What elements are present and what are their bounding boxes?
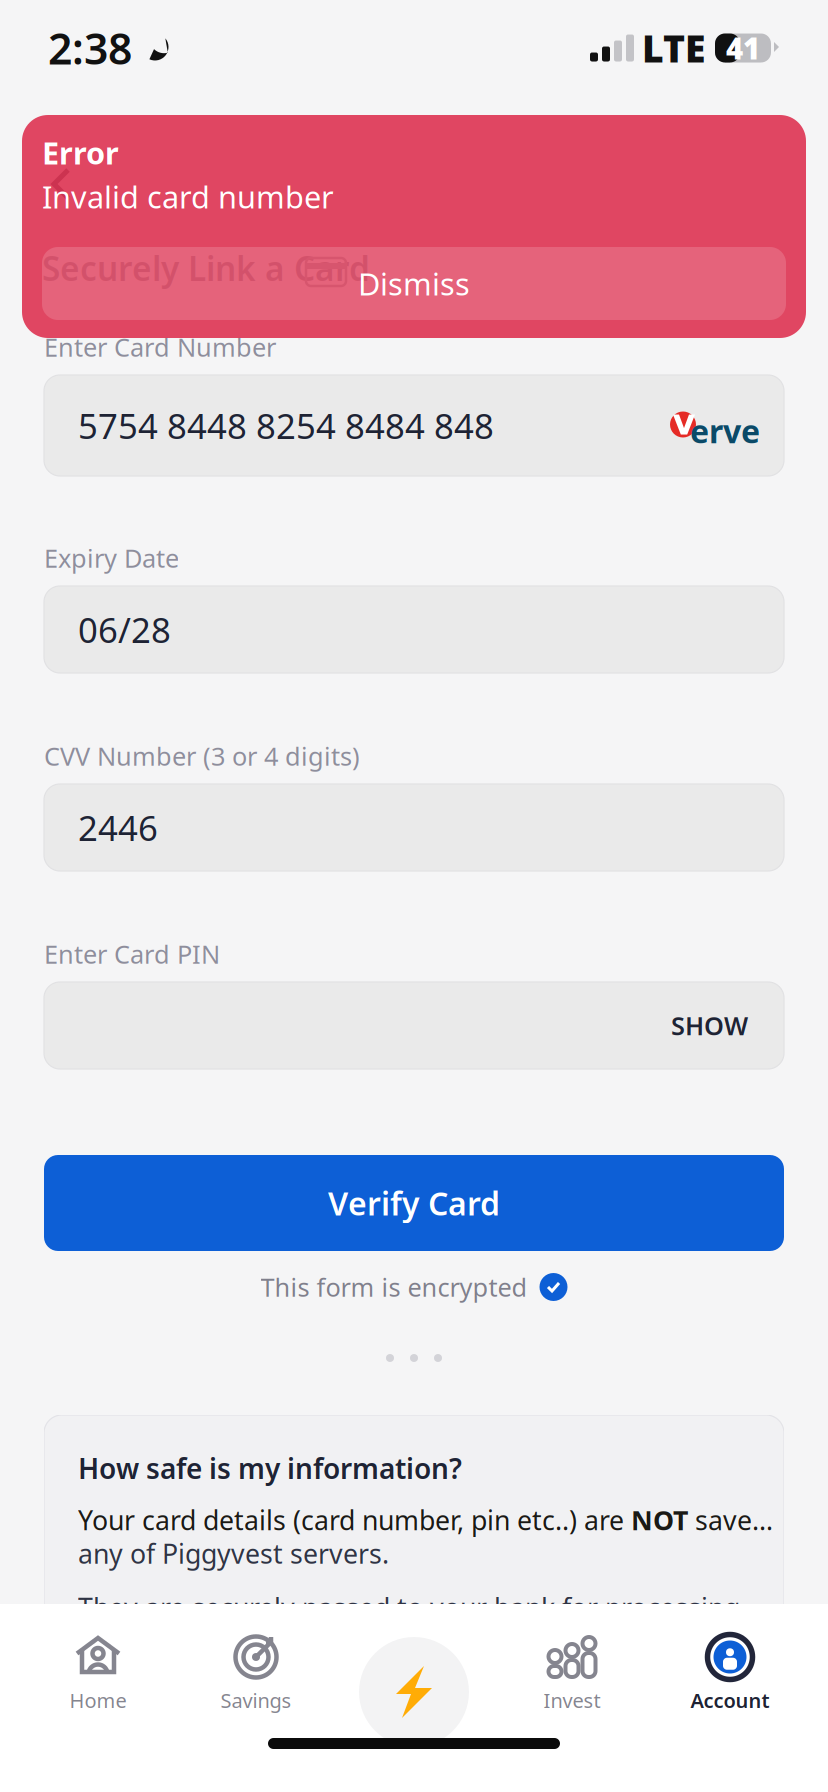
button[interactable]: Dismiss	[42, 247, 786, 320]
staticText: How safe is my information?	[78, 1450, 462, 1487]
staticText: Enter Card PIN	[44, 937, 220, 971]
staticText: Securely Link a Card	[42, 246, 370, 290]
staticText: Your card details (card number, pin etc.…	[78, 1502, 778, 1538]
button[interactable]: Invest	[493, 1634, 651, 1750]
staticText: This form is encrypted	[260, 1270, 527, 1304]
staticText: 5754 8448 8254 8484 848	[78, 402, 494, 448]
staticText: 2446	[78, 804, 158, 850]
staticText: Expiry Date	[44, 541, 179, 575]
staticText: Savings	[220, 1687, 291, 1714]
button[interactable]: Account	[651, 1634, 809, 1750]
staticText: Enter Card Number	[44, 330, 276, 364]
staticText: 2:38	[48, 20, 132, 76]
button[interactable]: Home	[19, 1634, 177, 1750]
button[interactable]: Quick action	[335, 1634, 493, 1750]
staticText: Dismiss	[358, 263, 470, 304]
staticText: LTE	[642, 23, 705, 73]
button[interactable]: Verify Card	[44, 1155, 784, 1251]
staticText: 41	[726, 28, 760, 67]
staticText: erve	[690, 409, 760, 452]
button[interactable]: SHOW	[671, 1009, 748, 1042]
staticText: Home	[69, 1687, 126, 1714]
staticText: Invest	[543, 1687, 600, 1714]
button[interactable]: Savings	[177, 1634, 335, 1750]
staticText: They are securely passed to your bank fo…	[78, 1590, 778, 1625]
staticText: any of Piggyvest servers.	[78, 1536, 389, 1571]
staticText: Invalid card number	[42, 176, 334, 217]
staticText: SHOW	[671, 1009, 748, 1042]
staticText: Error	[42, 132, 119, 173]
staticText: CVV Number (3 or 4 digits)	[44, 739, 360, 773]
staticText: 06/28	[78, 606, 171, 652]
staticText: Account	[690, 1687, 769, 1714]
staticText: Verify Card	[328, 1182, 500, 1224]
